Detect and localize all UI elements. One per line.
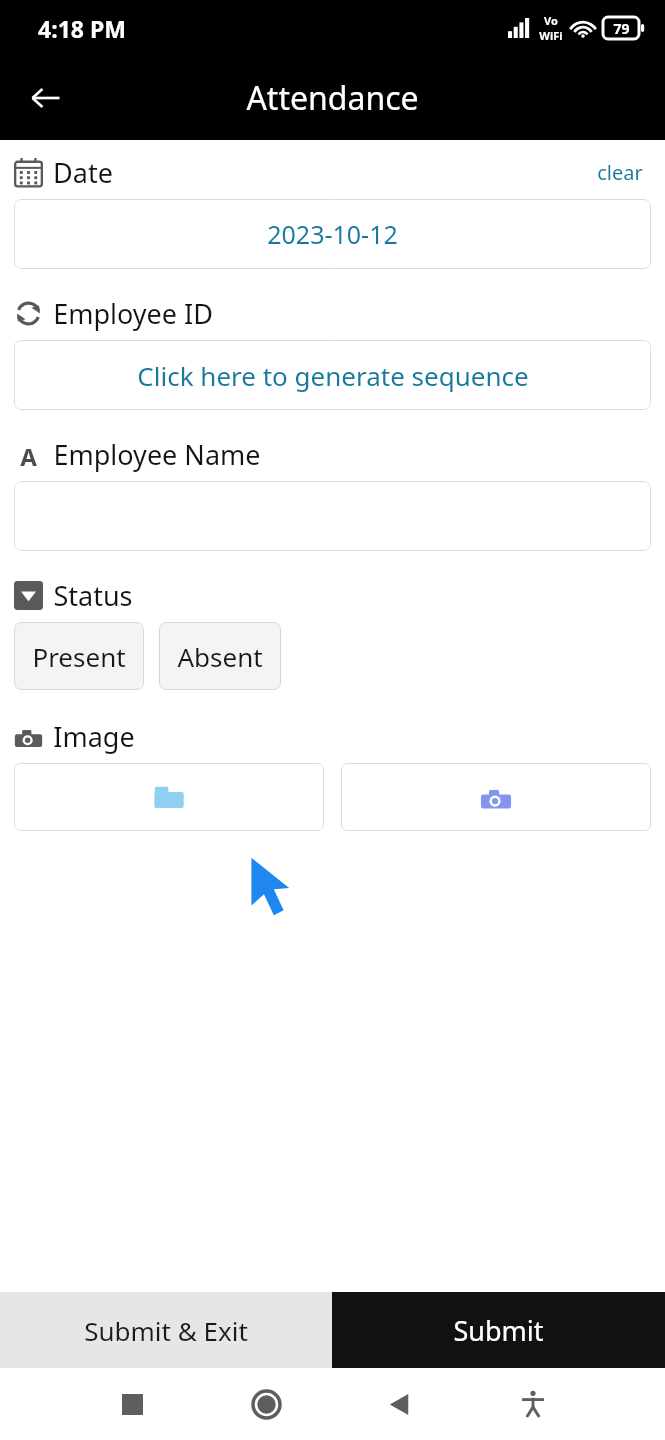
- staticText: 2023-10-12: [267, 217, 398, 251]
- button[interactable]: clear: [591, 157, 649, 188]
- staticText: A: [20, 440, 37, 469]
- staticText: Status: [53, 577, 133, 614]
- staticText: WiFi: [539, 28, 563, 43]
- staticText: Image: [53, 718, 135, 755]
- button[interactable]: 2023-10-12: [14, 199, 651, 269]
- button[interactable]: Recent apps: [105, 1377, 159, 1431]
- button[interactable]: Absent: [159, 622, 281, 690]
- button[interactable]: Present: [14, 622, 144, 690]
- button[interactable]: Submit: [332, 1292, 665, 1368]
- button[interactable]: Take photo with camera: [341, 763, 651, 831]
- button[interactable]: Click here to generate sequence: [14, 340, 651, 410]
- button[interactable]: Back: [372, 1377, 426, 1431]
- staticText: Date: [53, 154, 113, 191]
- staticText: Submit: [453, 1312, 544, 1349]
- staticText: Submit & Exit: [84, 1313, 248, 1348]
- staticText: Vo: [544, 13, 558, 28]
- staticText: Click here to generate sequence: [137, 358, 529, 393]
- button[interactable]: Home: [239, 1377, 293, 1431]
- staticText: Present: [32, 639, 126, 674]
- staticText: Absent: [177, 639, 263, 674]
- staticText: 4:18 PM: [38, 13, 126, 44]
- button[interactable]: Submit & Exit: [0, 1292, 332, 1368]
- staticText: 79: [613, 19, 630, 38]
- staticText: Employee ID: [53, 295, 213, 332]
- button[interactable]: Accessibility: [506, 1377, 560, 1431]
- staticText: clear: [597, 159, 643, 186]
- staticText: Employee Name: [53, 436, 261, 473]
- staticText: Attendance: [246, 76, 419, 120]
- button[interactable]: Back: [18, 70, 74, 126]
- button[interactable]: [14, 481, 651, 551]
- button[interactable]: Pick image from gallery: [14, 763, 324, 831]
